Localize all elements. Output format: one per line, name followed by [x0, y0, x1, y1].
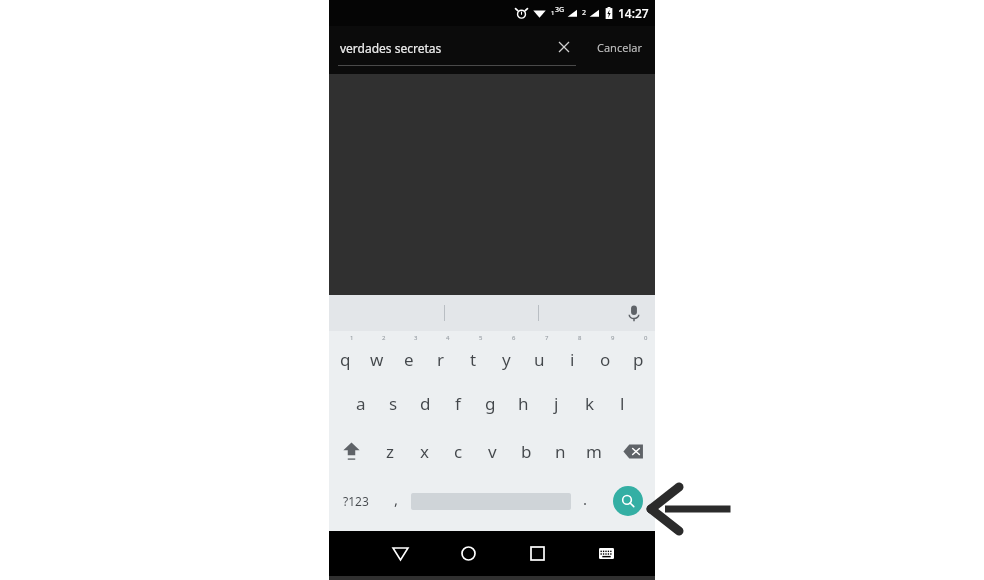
- staticText: 2: [382, 334, 386, 342]
- button[interactable]: n: [543, 427, 577, 475]
- button[interactable]: 4: [425, 331, 457, 379]
- button[interactable]: 2: [361, 331, 393, 379]
- button[interactable]: Voice input: [621, 300, 647, 326]
- button[interactable]: h: [507, 379, 540, 427]
- button[interactable]: ,: [382, 475, 411, 527]
- button[interactable]: ?123: [329, 475, 382, 527]
- staticText: f: [455, 392, 461, 415]
- button[interactable]: Recents: [503, 531, 572, 576]
- staticText: e: [404, 348, 414, 371]
- button[interactable]: Backspace: [611, 427, 655, 475]
- staticText: u: [534, 348, 545, 371]
- staticText: q: [340, 348, 351, 371]
- button[interactable]: 3: [393, 331, 425, 379]
- button[interactable]: 9: [589, 331, 622, 379]
- button[interactable]: 8: [556, 331, 589, 379]
- staticText: w: [370, 348, 384, 371]
- staticText: c: [454, 440, 463, 463]
- staticText: 5: [479, 334, 483, 342]
- button[interactable]: g: [474, 379, 507, 427]
- staticText: Cancelar: [597, 40, 642, 55]
- staticText: .: [583, 489, 588, 509]
- button[interactable]: a: [345, 379, 377, 427]
- staticText: 3: [414, 334, 418, 342]
- staticText: h: [518, 392, 529, 415]
- button[interactable]: Home: [434, 531, 503, 576]
- staticText: 6: [512, 334, 516, 342]
- staticText: 0: [644, 334, 648, 342]
- button[interactable]: Cancelar: [597, 40, 642, 55]
- button[interactable]: d: [409, 379, 441, 427]
- staticText: i: [570, 348, 575, 371]
- button[interactable]: c: [441, 427, 475, 475]
- staticText: j: [554, 392, 559, 415]
- button[interactable]: m: [577, 427, 611, 475]
- button[interactable]: k: [573, 379, 606, 427]
- staticText: r: [437, 348, 445, 371]
- button[interactable]: .: [571, 475, 600, 527]
- button[interactable]: 7: [523, 331, 556, 379]
- staticText: d: [420, 392, 431, 415]
- staticText: 8: [578, 334, 582, 342]
- staticText: k: [585, 392, 595, 415]
- button[interactable]: f: [441, 379, 474, 427]
- button[interactable]: b: [509, 427, 543, 475]
- button[interactable]: 5: [457, 331, 490, 379]
- staticText: t: [470, 348, 477, 371]
- button[interactable]: 1: [329, 331, 361, 379]
- button[interactable]: 6: [490, 331, 523, 379]
- staticText: 9: [611, 334, 615, 342]
- staticText: z: [386, 440, 394, 463]
- staticText: x: [420, 440, 429, 463]
- staticText: o: [600, 348, 611, 371]
- staticText: l: [620, 392, 625, 415]
- staticText: 14:27: [618, 5, 649, 21]
- button[interactable]: Clear search: [551, 34, 577, 60]
- staticText: ?123: [343, 493, 369, 509]
- staticText: g: [485, 392, 496, 415]
- button[interactable]: l: [606, 379, 639, 427]
- button[interactable]: 0: [622, 331, 655, 379]
- staticText: ,: [394, 489, 399, 509]
- button[interactable]: Switch keyboard: [572, 531, 641, 576]
- staticText: 4: [446, 334, 450, 342]
- button[interactable]: [411, 475, 571, 527]
- button[interactable]: s: [377, 379, 409, 427]
- staticText: verdades secretas: [340, 40, 442, 56]
- button[interactable]: Search: [600, 475, 655, 527]
- button[interactable]: x: [407, 427, 441, 475]
- button[interactable]: v: [475, 427, 509, 475]
- staticText: y: [502, 348, 511, 371]
- staticText: 3G: [555, 5, 565, 15]
- staticText: 7: [545, 334, 549, 342]
- staticText: 2: [582, 8, 587, 18]
- staticText: n: [555, 440, 566, 463]
- staticText: a: [356, 392, 366, 415]
- staticText: s: [389, 392, 398, 415]
- staticText: v: [488, 440, 497, 463]
- staticText: m: [586, 440, 602, 463]
- button[interactable]: j: [540, 379, 573, 427]
- staticText: p: [633, 348, 644, 371]
- staticText: b: [521, 440, 532, 463]
- button[interactable]: z: [373, 427, 407, 475]
- staticText: 1: [551, 9, 555, 17]
- button[interactable]: Shift: [329, 427, 373, 475]
- staticText: 1: [350, 334, 354, 342]
- button[interactable]: Back: [366, 531, 434, 576]
